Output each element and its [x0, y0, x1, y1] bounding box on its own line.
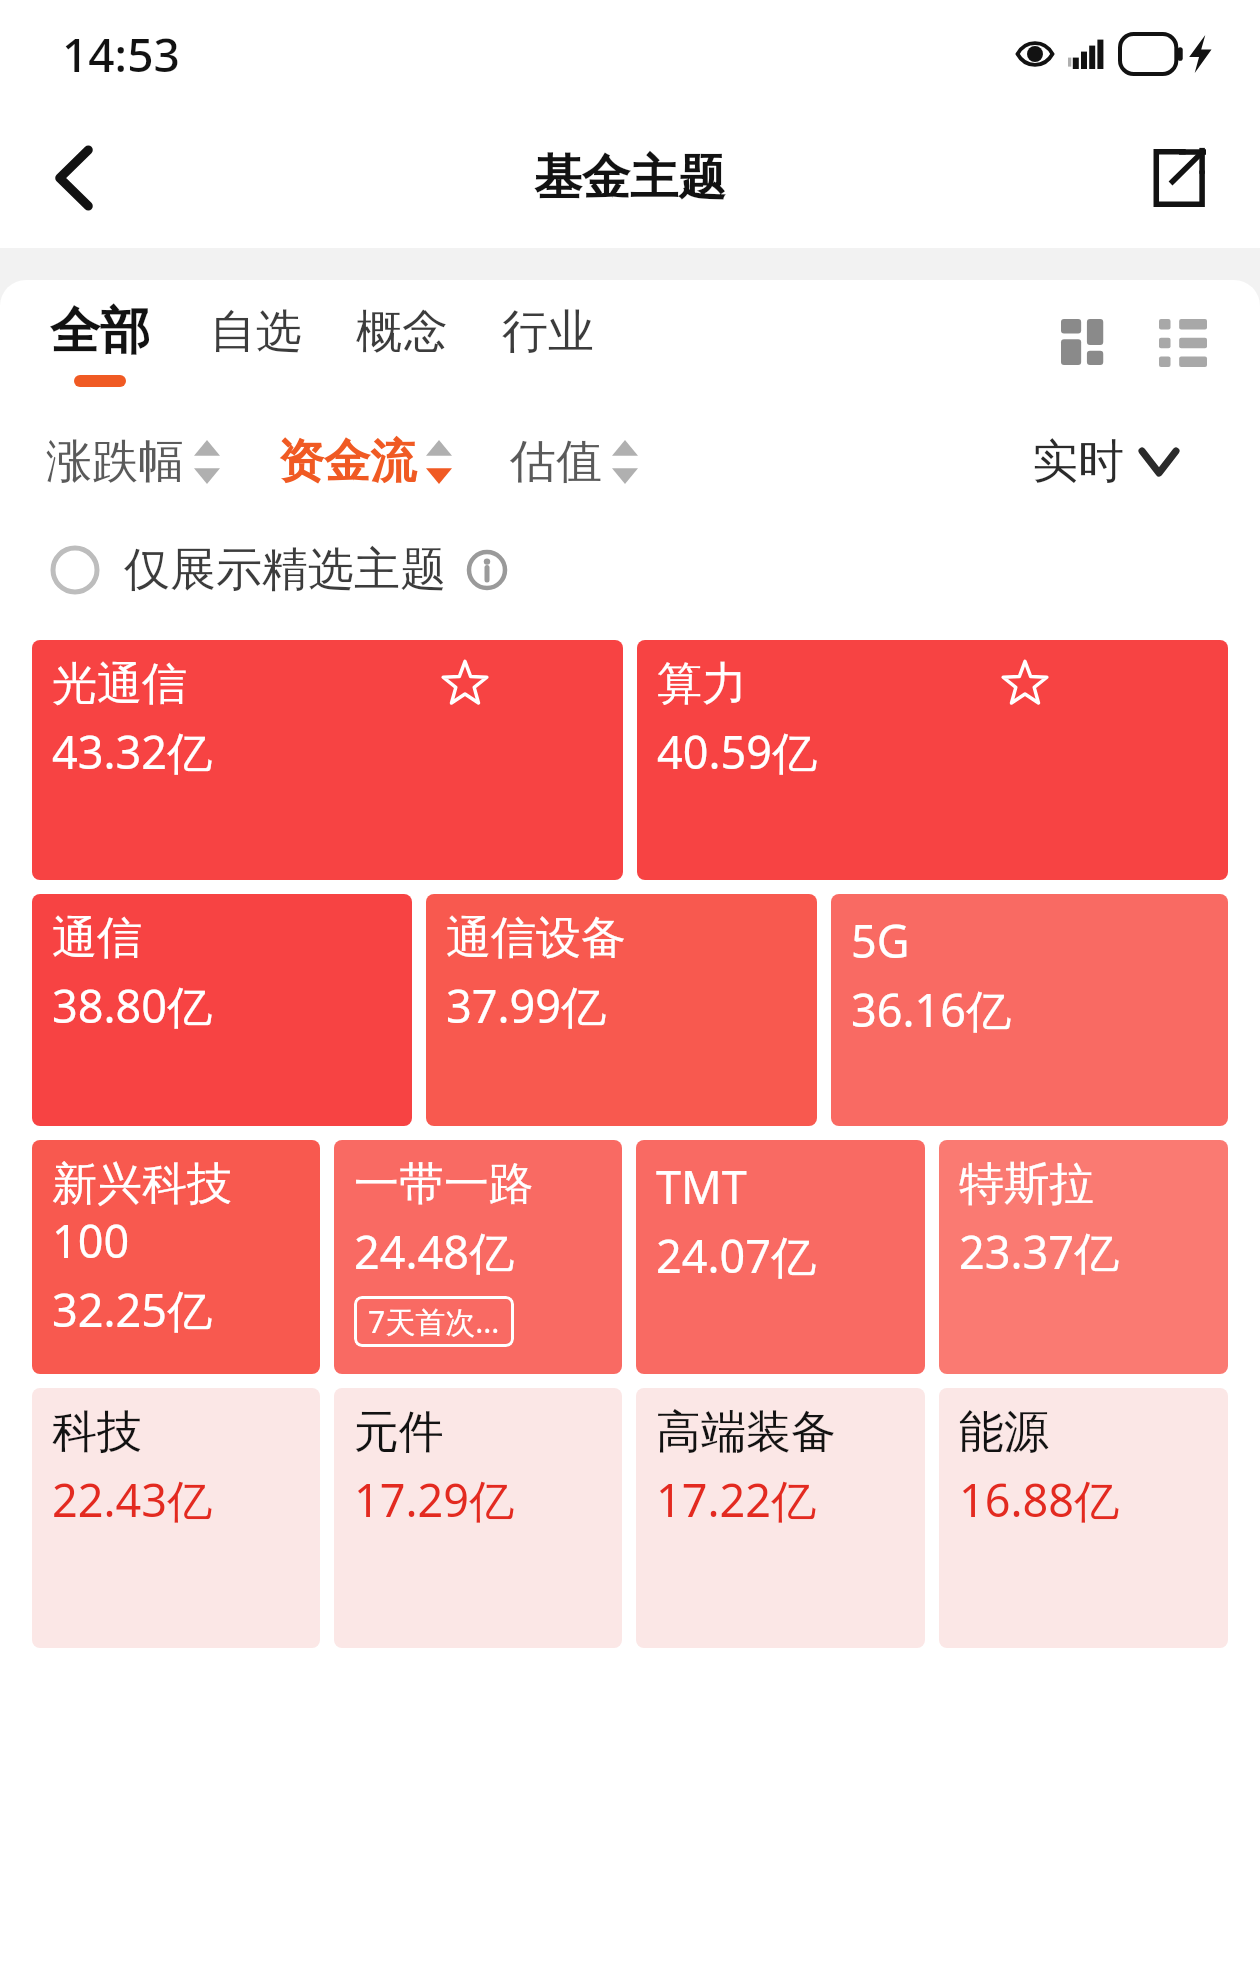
staticText: 基金主题 — [534, 148, 726, 208]
button[interactable]: 仅展示精选主题 — [46, 533, 512, 607]
staticText: 24.07亿 — [656, 1225, 817, 1286]
button[interactable]: Grid view — [1048, 306, 1122, 380]
button[interactable]: 高端装备 — [636, 1388, 925, 1648]
staticText: 22.43亿 — [52, 1469, 213, 1530]
button[interactable]: Favourite 算力 — [998, 656, 1052, 710]
staticText: 实时 — [1032, 433, 1124, 491]
button[interactable]: 全部 — [46, 294, 154, 393]
staticText: 自选 — [210, 303, 302, 361]
button[interactable]: 资金流 — [278, 425, 452, 499]
button[interactable]: 概念 — [352, 297, 452, 391]
button[interactable]: 估值 — [510, 425, 638, 499]
button[interactable]: Favourite 光通信 — [438, 656, 492, 710]
button[interactable]: 光通信 — [32, 640, 623, 880]
button[interactable]: Back — [30, 134, 118, 222]
button[interactable]: 元件 — [334, 1388, 622, 1648]
button[interactable]: 特斯拉 — [939, 1140, 1228, 1374]
button[interactable]: 新兴科技100 — [32, 1140, 320, 1374]
staticText: 通信设备 — [446, 910, 626, 967]
staticText: 元件 — [354, 1404, 444, 1461]
button[interactable]: 科技 — [32, 1388, 320, 1648]
staticText: 7天首次... — [368, 1301, 500, 1342]
button[interactable]: 一带一路 — [334, 1140, 622, 1374]
staticText: 17.29亿 — [354, 1469, 515, 1530]
staticText: 科技 — [52, 1404, 142, 1461]
staticText: 14:53 — [62, 23, 180, 86]
staticText: 仅展示精选主题 — [124, 541, 446, 599]
button[interactable]: 算力 — [637, 640, 1228, 880]
staticText: 全部 — [50, 300, 150, 363]
button[interactable]: 通信设备 — [426, 894, 817, 1126]
staticText: 一带一路 — [354, 1156, 534, 1213]
staticText: 43.32亿 — [52, 721, 213, 782]
staticText: 估值 — [510, 433, 602, 491]
button[interactable]: 自选 — [206, 297, 306, 391]
button[interactable]: 通信 — [32, 894, 412, 1126]
staticText: 涨跌幅 — [46, 433, 184, 491]
staticText: TMT — [656, 1156, 747, 1217]
button[interactable]: 行业 — [498, 297, 598, 391]
staticText: 38.80亿 — [52, 975, 213, 1036]
staticText: 通信 — [52, 910, 142, 967]
staticText: 40.59亿 — [657, 721, 818, 782]
staticText: 新兴科技100 — [52, 1156, 304, 1271]
button[interactable]: TMT — [636, 1140, 925, 1374]
staticText: 光通信 — [52, 656, 187, 713]
staticText: 24.48亿 — [354, 1221, 515, 1282]
staticText: 16.88亿 — [959, 1469, 1120, 1530]
staticText: 行业 — [502, 303, 594, 361]
staticText: 36.16亿 — [851, 979, 1012, 1040]
staticText: 37.99亿 — [446, 975, 607, 1036]
staticText: 17.22亿 — [656, 1469, 817, 1530]
staticText: 资金流 — [278, 433, 416, 491]
staticText: 能源 — [959, 1404, 1049, 1461]
button[interactable]: Share — [1132, 134, 1220, 222]
button[interactable]: 实时 — [1032, 433, 1176, 491]
staticText: 算力 — [657, 656, 747, 713]
button[interactable]: 5G — [831, 894, 1228, 1126]
button[interactable]: 能源 — [939, 1388, 1228, 1648]
button[interactable]: List view — [1146, 306, 1220, 380]
staticText: 高端装备 — [656, 1404, 836, 1461]
button[interactable]: 涨跌幅 — [46, 425, 220, 499]
staticText: 概念 — [356, 303, 448, 361]
staticText: 5G — [851, 910, 910, 971]
staticText: 32.25亿 — [52, 1279, 213, 1340]
staticText: 23.37亿 — [959, 1221, 1120, 1282]
staticText: 特斯拉 — [959, 1156, 1094, 1213]
